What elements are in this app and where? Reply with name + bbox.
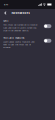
- button[interactable]: Back: [0, 10, 9, 16]
- staticText: Notifications: [11, 11, 29, 15]
- button[interactable]: Sync: [44, 24, 51, 28]
- staticText: 9:41: [4, 3, 8, 6]
- staticText: Tips and Features: [3, 36, 24, 39]
- staticText: Learn about useful features and how to g…: [3, 40, 34, 49]
- button[interactable]: Tips and Features: [0, 32, 55, 49]
- button[interactable]: Tips and Features: [44, 39, 51, 43]
- staticText: This must be turned on to receive tabs a…: [3, 23, 37, 32]
- staticText: Sync: [3, 19, 8, 22]
- button[interactable]: Sync: [0, 17, 55, 32]
